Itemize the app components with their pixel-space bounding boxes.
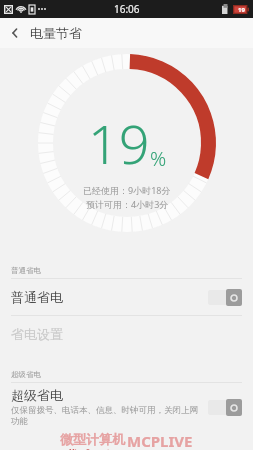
staticText: 超级省电 <box>11 387 63 403</box>
staticText: 微型计算机 <box>60 431 125 447</box>
staticText: 普通省电 <box>11 266 41 275</box>
staticText: % <box>150 145 167 172</box>
button[interactable]: 普通省电 <box>0 279 253 315</box>
button[interactable]: Toggle power saving <box>208 289 242 306</box>
staticText: 19 <box>238 6 245 14</box>
staticText: 已经使用：9小时18分 <box>83 184 171 196</box>
staticText: 19 <box>88 106 150 180</box>
staticText: 电量节省 <box>30 25 82 41</box>
button[interactable]: 省电设置 <box>0 316 253 352</box>
staticText: 省电设置 <box>11 326 63 342</box>
staticText: 超级省电 <box>11 370 41 379</box>
staticText: MicroComputer <box>69 447 116 450</box>
staticText: 仅保留拨号、电话本、信息、时钟可用，关闭上网 功能 <box>11 405 198 427</box>
button[interactable]: Back <box>0 18 30 48</box>
staticText: MCPLIVE <box>127 431 193 450</box>
staticText: 普通省电 <box>11 289 63 305</box>
staticText: 预计可用：4小时3分 <box>86 198 169 210</box>
button[interactable]: 超级省电 <box>0 383 253 431</box>
staticText: 16:06 <box>114 2 140 16</box>
button[interactable]: Toggle power saving <box>208 399 242 416</box>
